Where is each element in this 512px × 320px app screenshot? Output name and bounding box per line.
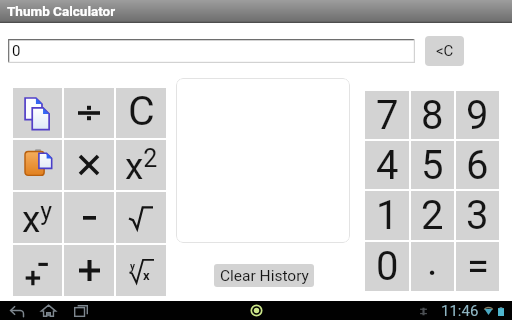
staticText: = [467, 243, 489, 290]
button[interactable]: 7 [365, 91, 409, 139]
button[interactable]: Divide [64, 88, 114, 138]
button[interactable]: 0 [365, 242, 409, 291]
button[interactable]: Back [7, 301, 28, 320]
staticText: C [128, 87, 155, 135]
button[interactable]: 8 [411, 91, 454, 139]
staticText: <C [436, 42, 454, 60]
staticText: Thumb Calculator [7, 3, 116, 19]
staticText: 2 [421, 192, 444, 239]
staticText: x [143, 268, 150, 283]
button[interactable]: 6 [456, 141, 499, 189]
staticText: Clear History [220, 267, 309, 285]
button[interactable]: 3 [456, 191, 499, 240]
button[interactable]: Plus [64, 245, 114, 296]
button[interactable]: Multiply [64, 140, 114, 190]
button[interactable]: Copy [13, 88, 62, 138]
button[interactable]: Paste [13, 140, 62, 190]
staticText: 7 [376, 92, 399, 139]
button[interactable]: 5 [411, 141, 454, 189]
staticText: 9 [466, 92, 489, 139]
staticText: 4 [376, 142, 399, 189]
button[interactable]: Square root [116, 192, 166, 243]
button[interactable]: Nth root [116, 245, 166, 296]
button[interactable]: Home [38, 301, 59, 320]
staticText: 3 [466, 192, 489, 239]
staticText: 11:46 [441, 302, 479, 320]
staticText: 0 [12, 42, 21, 60]
button[interactable]: 9 [456, 91, 499, 139]
button[interactable]: . [411, 242, 454, 291]
staticText: 0 [376, 243, 399, 290]
button[interactable]: 1 [365, 191, 409, 240]
staticText: x2 [125, 144, 158, 188]
button[interactable]: <C [425, 36, 464, 66]
button[interactable]: Recent apps [70, 301, 91, 320]
button[interactable]: Minus [64, 192, 114, 243]
button[interactable]: = [456, 242, 499, 291]
staticText: 8 [421, 92, 444, 139]
staticText: 1 [376, 192, 399, 239]
button[interactable]: Clear [116, 88, 166, 138]
button[interactable]: Square [116, 140, 166, 190]
staticText: xy [22, 197, 53, 241]
button[interactable]: 4 [365, 141, 409, 189]
staticText: . [427, 238, 438, 285]
staticText: 5 [421, 142, 444, 189]
button[interactable]: Clear History [214, 264, 314, 287]
button[interactable]: History [176, 78, 350, 243]
button[interactable]: Expression [8, 39, 415, 63]
button[interactable]: 2 [411, 191, 454, 240]
button[interactable]: Power [13, 192, 62, 243]
button[interactable]: Toggle sign [13, 245, 62, 296]
staticText: y [130, 261, 136, 273]
staticText: 6 [466, 142, 489, 189]
